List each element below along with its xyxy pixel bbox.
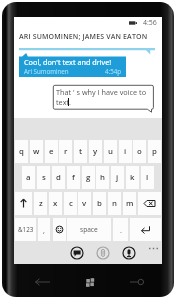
staticText: l (146, 172, 149, 183)
button[interactable]: m (123, 192, 136, 215)
staticText: b (97, 198, 102, 209)
staticText: y (93, 146, 98, 157)
staticText: o (137, 146, 142, 157)
staticText: z (39, 198, 43, 209)
staticText: space (80, 225, 98, 234)
button[interactable]: h (96, 166, 109, 189)
staticText: g (86, 172, 91, 183)
button[interactable]: l (141, 166, 154, 189)
button[interactable]: a (22, 166, 35, 189)
button[interactable]: w (30, 140, 43, 163)
staticText: x (53, 198, 58, 209)
button[interactable]: v (78, 192, 91, 215)
button[interactable]: k (126, 166, 139, 189)
button[interactable]: Attach (95, 245, 111, 261)
staticText: e (49, 146, 54, 157)
staticText: text. (56, 97, 72, 107)
staticText: 4:56 (143, 18, 157, 28)
staticText: &123 (18, 225, 34, 234)
button[interactable]: t (74, 140, 87, 163)
button[interactable]: , (38, 218, 50, 241)
button[interactable]: Voice input (121, 245, 137, 261)
button[interactable]: More options (145, 242, 162, 254)
button[interactable]: d (52, 166, 65, 189)
staticText: ARI SUMOMINEN; JAMES VAN EATON (19, 32, 148, 42)
staticText: n (112, 198, 117, 209)
button[interactable]: p (148, 140, 161, 163)
button[interactable]: Messaging (69, 245, 85, 261)
button[interactable]: b (93, 192, 106, 215)
button[interactable]: Emoji (53, 218, 66, 241)
button[interactable]: . (113, 218, 128, 241)
staticText: m (126, 198, 134, 209)
button[interactable]: u (104, 140, 117, 163)
button[interactable]: x (49, 192, 62, 215)
staticText: t (79, 146, 83, 157)
staticText: u (108, 146, 113, 157)
button[interactable]: Back (30, 272, 54, 292)
button[interactable]: o (133, 140, 146, 163)
staticText: v (82, 198, 87, 209)
staticText: Cool, don't text and drive! (24, 57, 112, 67)
button[interactable]: Backspace (138, 192, 161, 215)
button[interactable]: j (111, 166, 124, 189)
button[interactable]: Shift (15, 192, 32, 215)
staticText: 4:54p (105, 67, 122, 75)
button[interactable]: z (34, 192, 47, 215)
staticText: a (26, 172, 31, 183)
button[interactable]: n (108, 192, 121, 215)
button[interactable]: s (37, 166, 50, 189)
button[interactable]: i (119, 140, 132, 163)
button[interactable]: q (15, 140, 28, 163)
button[interactable]: c (64, 192, 77, 215)
staticText: q (19, 146, 24, 157)
staticText: j (116, 172, 119, 183)
staticText: i (124, 146, 127, 157)
staticText: s (42, 172, 46, 183)
button[interactable]: space (67, 218, 111, 241)
button[interactable]: f (67, 166, 80, 189)
button[interactable]: Search (124, 272, 148, 292)
button[interactable]: &123 (15, 218, 36, 241)
staticText: That ' s why I have voice to (56, 87, 147, 97)
staticText: h (100, 172, 105, 183)
button[interactable]: e (45, 140, 58, 163)
button[interactable]: Enter (130, 218, 161, 241)
staticText: c (69, 198, 73, 209)
staticText: p (152, 146, 157, 157)
button[interactable]: g (82, 166, 95, 189)
staticText: r (64, 146, 68, 157)
button[interactable]: r (59, 140, 72, 163)
staticText: . (120, 225, 122, 235)
staticText: w (33, 146, 40, 157)
staticText: , (43, 225, 45, 235)
button[interactable]: y (89, 140, 102, 163)
staticText: f (72, 172, 75, 183)
staticText: d (56, 172, 61, 183)
button[interactable]: Start (79, 272, 101, 292)
staticText: k (130, 172, 135, 183)
staticText: Ari Sumominen (24, 67, 69, 75)
